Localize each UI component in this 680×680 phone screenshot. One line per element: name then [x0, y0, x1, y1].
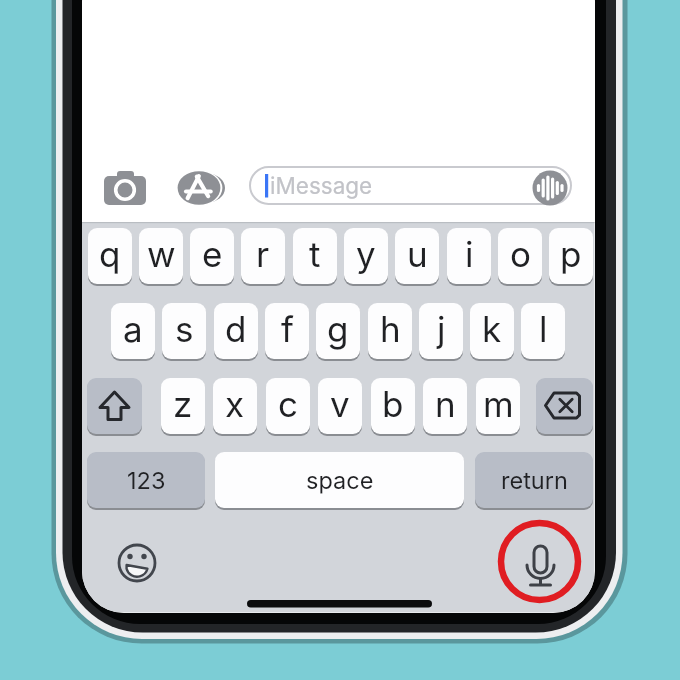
button[interactable] — [87, 378, 142, 434]
button[interactable]: y — [344, 228, 388, 284]
button[interactable]: e — [190, 228, 234, 284]
button[interactable]: v — [318, 378, 362, 434]
button[interactable]: a — [111, 303, 155, 359]
staticText: o — [510, 233, 531, 275]
button[interactable]: k — [470, 303, 514, 359]
button[interactable]: i — [447, 228, 491, 284]
staticText: 123 — [127, 466, 166, 494]
button[interactable] — [176, 168, 224, 208]
button[interactable]: x — [213, 378, 257, 434]
staticText: n — [435, 383, 456, 425]
staticText: y — [356, 233, 376, 275]
staticText: s — [175, 308, 194, 350]
button[interactable]: c — [266, 378, 310, 434]
staticText: u — [407, 233, 428, 275]
staticText: g — [327, 308, 349, 350]
staticText: m — [483, 383, 514, 425]
button[interactable] — [518, 539, 563, 584]
staticText: h — [380, 308, 401, 350]
button[interactable]: u — [395, 228, 439, 284]
staticText: j — [437, 308, 446, 350]
staticText: t — [309, 233, 321, 275]
button[interactable]: f — [265, 303, 309, 359]
staticText: return — [501, 466, 568, 494]
button[interactable]: d — [214, 303, 258, 359]
staticText: f — [281, 308, 294, 350]
staticText: x — [225, 383, 245, 425]
staticText: space — [306, 466, 374, 494]
button[interactable]: return — [475, 452, 593, 508]
staticText: d — [225, 308, 247, 350]
staticText: i — [465, 233, 474, 275]
staticText: a — [123, 308, 143, 350]
button[interactable]: iMessage — [250, 167, 571, 204]
button[interactable]: o — [498, 228, 542, 284]
staticText: iMessage — [270, 172, 373, 199]
staticText: p — [560, 233, 582, 275]
button[interactable]: t — [293, 228, 337, 284]
button[interactable]: h — [368, 303, 412, 359]
button[interactable]: l — [521, 303, 565, 359]
button[interactable]: space — [215, 452, 464, 508]
button[interactable]: g — [316, 303, 360, 359]
button[interactable]: z — [161, 378, 205, 434]
staticText: z — [173, 383, 193, 425]
button[interactable]: n — [423, 378, 467, 434]
button[interactable]: b — [371, 378, 415, 434]
button[interactable] — [100, 168, 150, 208]
staticText: k — [482, 308, 502, 350]
staticText: v — [330, 383, 350, 425]
button[interactable] — [115, 541, 159, 585]
staticText: b — [382, 383, 404, 425]
staticText: l — [539, 308, 548, 350]
staticText: q — [99, 233, 121, 275]
button[interactable]: r — [241, 228, 285, 284]
button[interactable]: q — [88, 228, 132, 284]
button[interactable]: m — [476, 378, 520, 434]
staticText: r — [256, 233, 270, 275]
staticText: c — [278, 383, 298, 425]
staticText: w — [147, 233, 176, 275]
staticText: e — [202, 233, 223, 275]
button[interactable]: j — [419, 303, 463, 359]
button[interactable]: p — [549, 228, 593, 284]
button[interactable]: w — [139, 228, 183, 284]
button[interactable]: 123 — [87, 452, 205, 508]
button[interactable] — [536, 378, 593, 434]
button[interactable]: s — [162, 303, 206, 359]
